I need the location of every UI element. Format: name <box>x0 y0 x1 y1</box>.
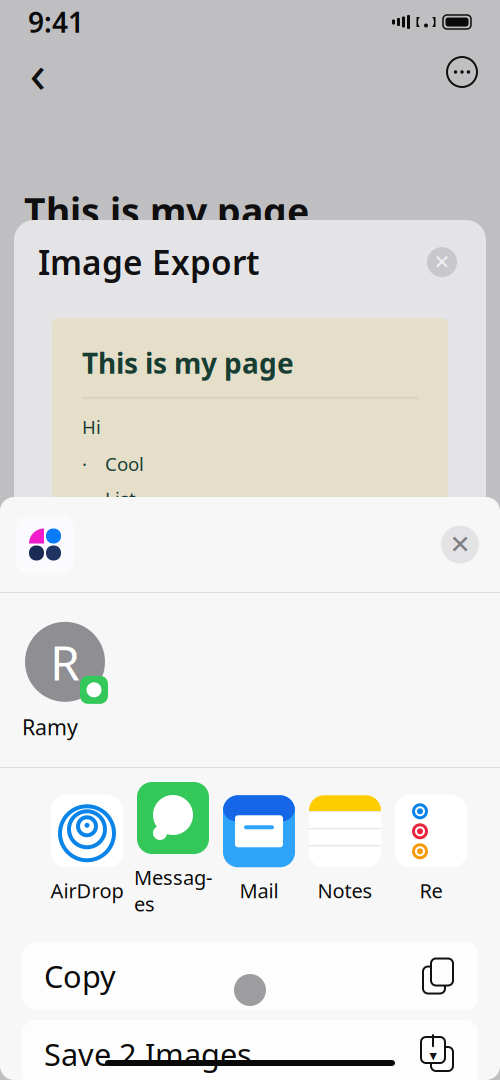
staticText: Mail <box>239 877 278 904</box>
staticText: AirDrop <box>50 877 123 904</box>
button[interactable]: AirDrop <box>44 795 130 904</box>
staticText: 9:41 <box>28 3 84 41</box>
staticText: ✕ <box>433 251 450 273</box>
staticText: List <box>105 486 136 511</box>
staticText: Hi <box>82 414 101 439</box>
staticText: ▾ <box>429 1047 436 1064</box>
staticText: Cool <box>105 451 144 476</box>
staticText: Re <box>419 877 442 904</box>
button[interactable]: Save 2 Images <box>22 1020 478 1080</box>
button[interactable]: Close <box>422 242 462 282</box>
button[interactable]: Messages <box>130 782 216 917</box>
button[interactable]: Mail <box>216 795 302 904</box>
button[interactable]: Copy <box>22 942 478 1010</box>
staticText: · <box>82 486 87 511</box>
staticText: Notes <box>317 877 372 904</box>
button[interactable]: Close <box>436 520 484 568</box>
staticText: ✕ <box>449 530 470 559</box>
staticText: This is my page <box>82 344 294 381</box>
staticText: R <box>50 630 80 694</box>
staticText: Copy <box>44 956 116 996</box>
button[interactable]: Back <box>16 50 60 94</box>
staticText: Save 2 Images <box>44 1034 252 1074</box>
staticText: Messages <box>134 864 212 917</box>
staticText: This is my page <box>24 186 309 236</box>
button[interactable]: Re <box>388 795 474 904</box>
button[interactable]: More <box>440 50 484 94</box>
button[interactable]: R <box>0 619 118 741</box>
button[interactable]: Notes <box>302 795 388 904</box>
staticText: Ramy <box>22 713 78 741</box>
staticText: ‹ <box>29 37 46 107</box>
staticText: · <box>82 451 87 476</box>
staticText: Image Export <box>38 240 260 284</box>
